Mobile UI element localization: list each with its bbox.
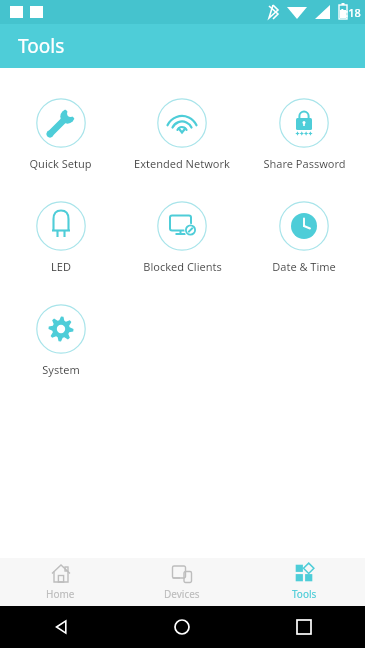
button[interactable]: Devices: [121, 558, 243, 606]
staticText: Extended Network: [134, 156, 230, 171]
button[interactable]: Blocked Clients: [121, 199, 243, 276]
staticText: Share Password: [263, 156, 346, 171]
staticText: System: [42, 362, 80, 377]
staticText: Tools: [292, 587, 317, 601]
button[interactable]: Quick Setup: [0, 96, 121, 173]
staticText: Quick Setup: [29, 156, 92, 171]
staticText: LED: [51, 259, 71, 274]
button[interactable]: Home: [121, 606, 243, 648]
staticText: Tools: [18, 33, 65, 59]
button[interactable]: Home: [0, 558, 121, 606]
button[interactable]: Extended Network: [121, 96, 243, 173]
staticText: 1:18: [339, 5, 361, 20]
staticText: Blocked Clients: [143, 259, 222, 274]
button[interactable]: Back: [0, 606, 121, 648]
staticText: Devices: [164, 587, 200, 601]
button[interactable]: Recents: [243, 606, 365, 648]
staticText: Home: [46, 587, 75, 601]
button[interactable]: Date & Time: [243, 199, 365, 276]
button[interactable]: Share Password: [243, 96, 365, 173]
button[interactable]: LED: [0, 199, 121, 276]
button[interactable]: System: [0, 302, 121, 379]
button[interactable]: Tools: [243, 558, 365, 606]
staticText: Date & Time: [272, 259, 336, 274]
